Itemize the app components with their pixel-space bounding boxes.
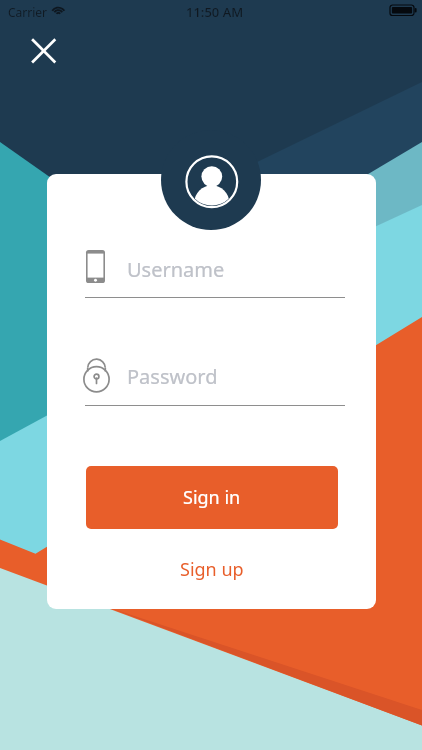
button[interactable]: Sign in bbox=[86, 466, 338, 529]
staticText: Sign up bbox=[180, 557, 244, 582]
staticText: Sign in bbox=[183, 485, 241, 510]
staticText: Carrier bbox=[8, 4, 48, 20]
staticText: Password bbox=[127, 363, 218, 390]
button[interactable]: Sign up bbox=[141, 549, 283, 589]
staticText: Username bbox=[127, 256, 225, 283]
button[interactable]: Close bbox=[24, 31, 64, 71]
staticText: 11:50 AM bbox=[186, 3, 244, 21]
